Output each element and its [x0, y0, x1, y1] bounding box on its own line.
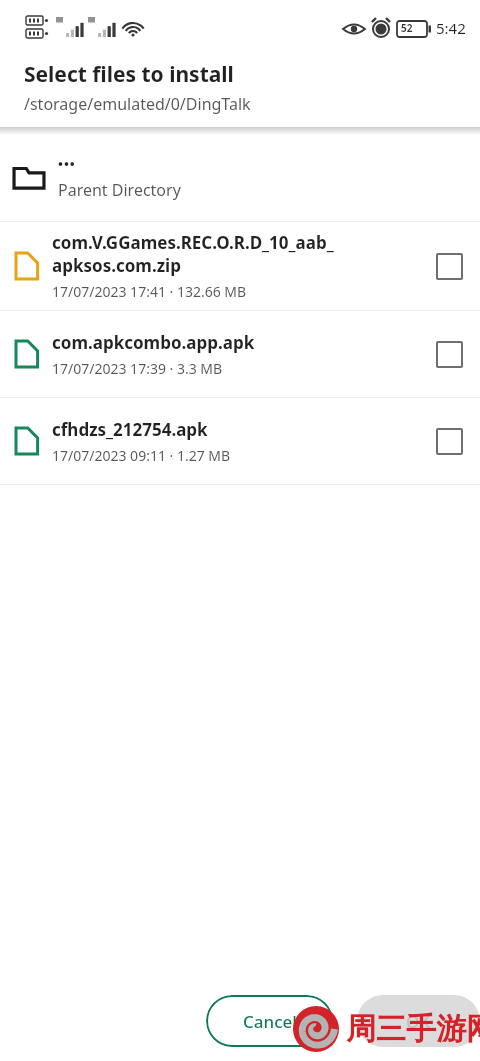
staticText: cfhdzs_212754.apk	[52, 418, 208, 441]
staticText: apksos.com.zip	[52, 254, 181, 277]
button[interactable]: Select file	[418, 398, 480, 484]
staticText: •••	[58, 155, 76, 173]
staticText: 17/07/2023 09:11 · 1.27 MB	[52, 446, 231, 465]
button[interactable]: Select file	[418, 222, 480, 310]
staticText: com.apkcombo.app.apk	[52, 331, 255, 354]
staticText: OK	[406, 1010, 431, 1033]
button[interactable]: OK	[357, 995, 480, 1047]
staticText: Cancel	[243, 1010, 297, 1033]
button[interactable]: com.apkcombo.app.apk	[0, 311, 480, 397]
staticText: com.V.GGames.REC.O.R.D_10_aab_	[52, 231, 334, 254]
staticText: Select files to install	[24, 60, 234, 89]
staticText: 52	[401, 21, 413, 35]
staticText: 17/07/2023 17:39 · 3.3 MB	[52, 359, 223, 378]
staticText: 周三手游网	[346, 1010, 480, 1048]
staticText: 17/07/2023 17:41 · 132.66 MB	[52, 282, 247, 301]
staticText: /storage/emulated/0/DingTalk	[24, 93, 251, 115]
button[interactable]: cfhdzs_212754.apk	[0, 398, 480, 484]
button[interactable]: •••	[0, 135, 480, 221]
staticText: 5:42	[436, 18, 466, 38]
button[interactable]: Select file	[418, 311, 480, 397]
button[interactable]: Cancel	[206, 995, 333, 1047]
button[interactable]: com.V.GGames.REC.O.R.D_10_aab_	[0, 222, 480, 310]
staticText: Parent Directory	[58, 179, 181, 201]
